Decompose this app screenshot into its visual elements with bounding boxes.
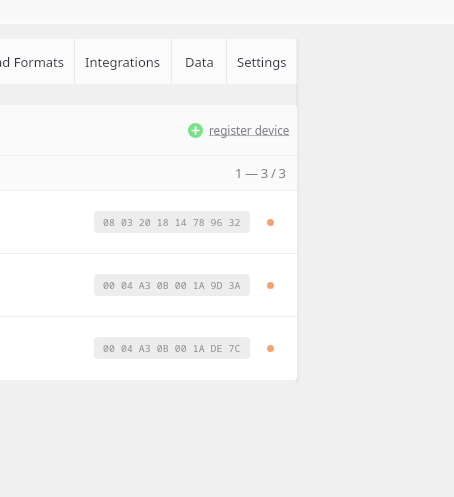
button[interactable]: Settings bbox=[227, 39, 297, 84]
button[interactable]: Integrations bbox=[75, 39, 171, 84]
staticText: 00 04 A3 0B 00 1A 9D 3A bbox=[103, 279, 241, 292]
button[interactable]: 00 04 A3 0B 00 1A DE 7C bbox=[0, 317, 297, 379]
button[interactable]: 00 04 A3 0B 00 1A 9D 3A bbox=[0, 254, 297, 316]
staticText: 08 03 20 18 14 78 96 32 bbox=[103, 216, 241, 229]
staticText: register device bbox=[209, 122, 290, 138]
button[interactable]: Payload Formats bbox=[0, 39, 74, 84]
button[interactable]: Data bbox=[172, 39, 226, 84]
staticText: 00 04 A3 0B 00 1A DE 7C bbox=[103, 342, 241, 355]
button[interactable]: 1 — 3 / 3 bbox=[235, 164, 286, 182]
staticText: Integrations bbox=[85, 53, 161, 71]
staticText: Data bbox=[185, 53, 214, 71]
staticText: Payload Formats bbox=[0, 53, 65, 71]
button[interactable]: Register device bbox=[188, 122, 290, 138]
staticText: Settings bbox=[237, 53, 287, 71]
other: Register device bbox=[188, 123, 203, 138]
button[interactable]: 08 03 20 18 14 78 96 32 bbox=[0, 191, 297, 253]
